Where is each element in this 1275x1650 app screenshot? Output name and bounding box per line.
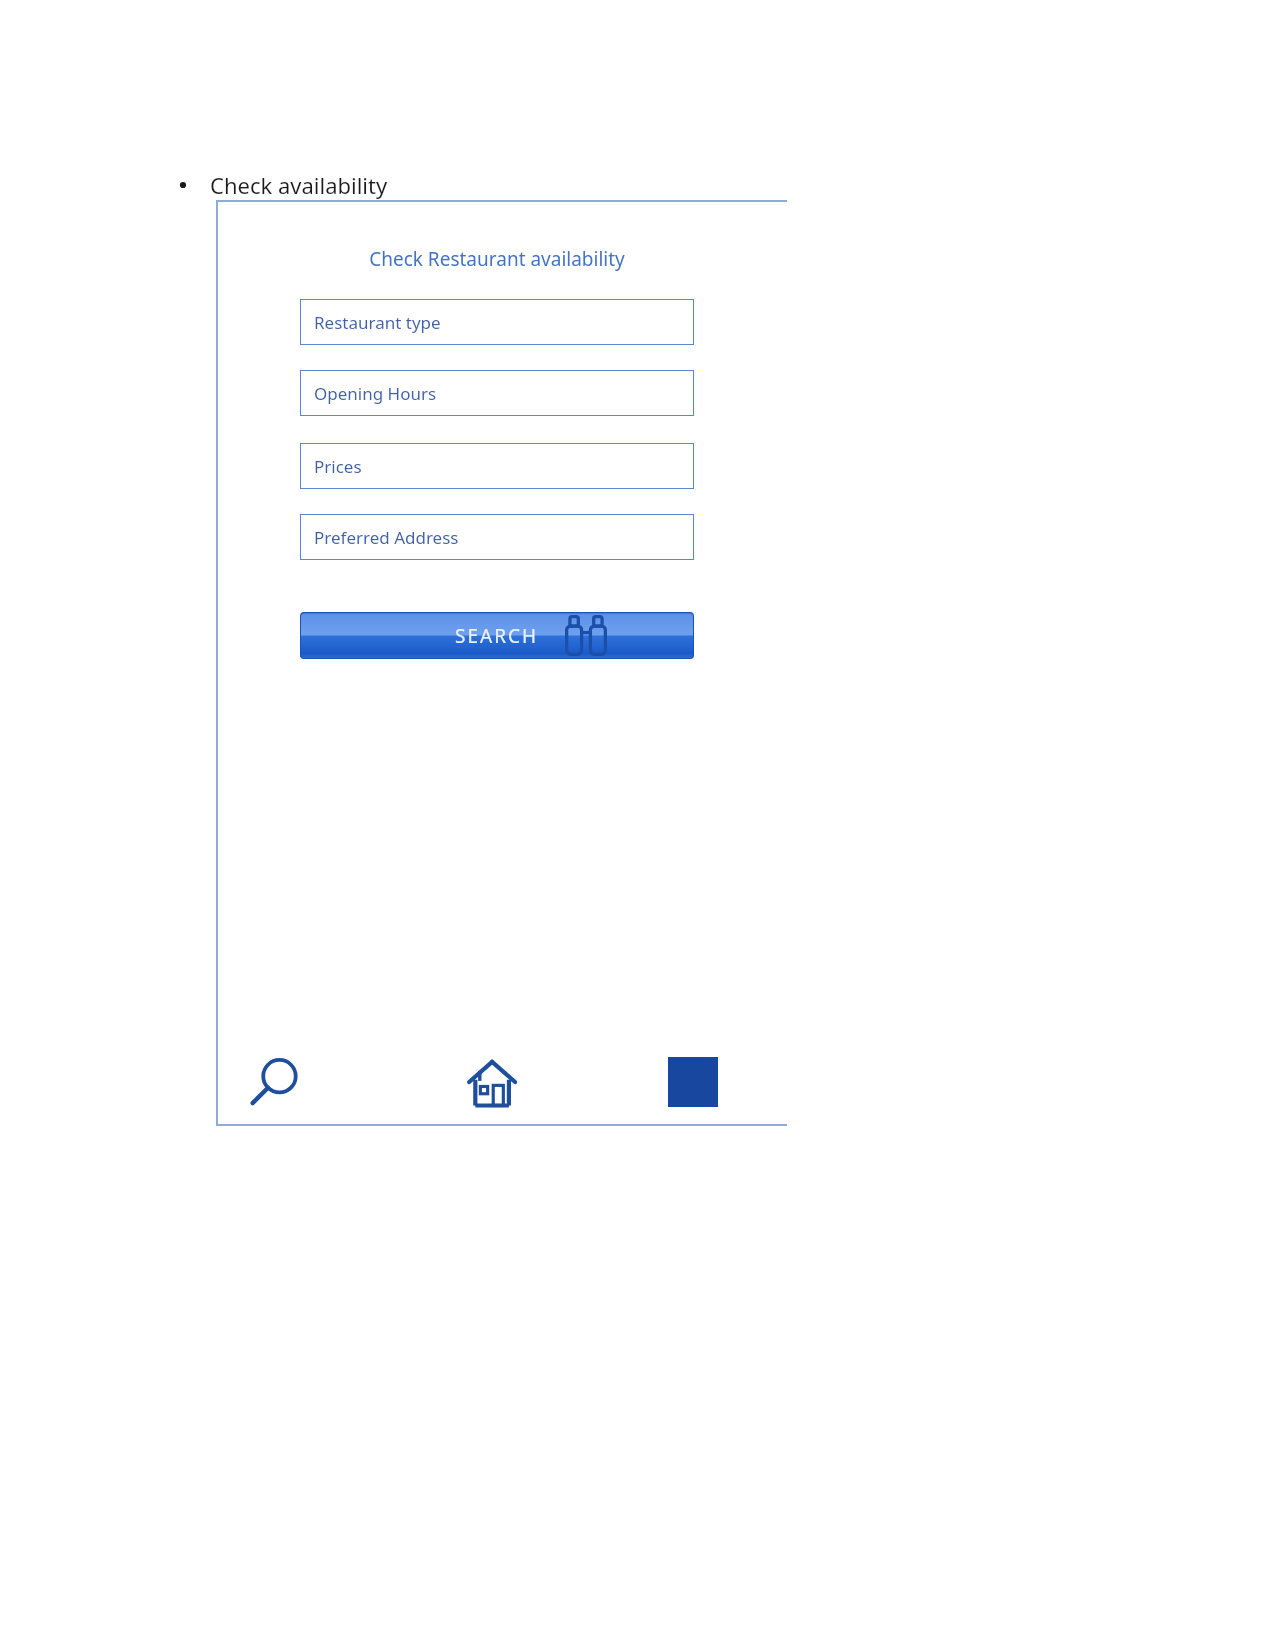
staticText: Preferred Address bbox=[314, 526, 459, 549]
staticText: SEARCH bbox=[455, 623, 539, 649]
button[interactable]: Profile bbox=[657, 1046, 729, 1118]
staticText: Prices bbox=[314, 455, 362, 478]
button[interactable]: Opening Hours bbox=[300, 370, 694, 416]
button[interactable]: Preferred Address bbox=[300, 514, 694, 560]
staticText: Check availability bbox=[210, 170, 388, 200]
staticText: Opening Hours bbox=[314, 382, 437, 405]
staticText: Restaurant type bbox=[314, 311, 441, 334]
button[interactable]: Search bbox=[240, 1046, 312, 1118]
button[interactable]: Restaurant type bbox=[300, 299, 694, 345]
button[interactable]: Home bbox=[455, 1046, 527, 1118]
button[interactable]: SEARCH bbox=[300, 612, 694, 659]
staticText: Check Restaurant availability bbox=[369, 246, 625, 272]
button[interactable]: Prices bbox=[300, 443, 694, 489]
